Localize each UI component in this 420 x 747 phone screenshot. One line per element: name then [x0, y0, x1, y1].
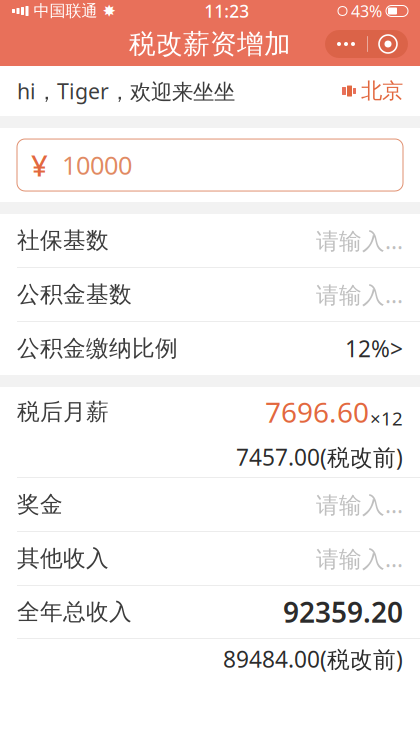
staticText: 奖金	[17, 491, 63, 518]
staticText: 北京	[361, 78, 403, 104]
button[interactable]: ¥	[17, 139, 403, 191]
staticText: 其他收入	[17, 545, 109, 572]
staticText: 公积金缴纳比例	[17, 335, 178, 362]
staticText: ¥	[31, 145, 48, 184]
staticText: 10000	[62, 148, 132, 182]
staticText: 社保基数	[17, 227, 109, 254]
staticText: hi，Tiger，欢迎来坐坐	[17, 77, 235, 105]
staticText: ×12	[370, 406, 403, 431]
button[interactable]: 社保基数	[0, 214, 420, 267]
staticText: 税改薪资增加	[129, 28, 291, 60]
staticText: 公积金基数	[17, 281, 132, 308]
staticText: 请输入...	[316, 225, 403, 255]
staticText: 11:23	[204, 0, 249, 22]
staticText: 请输入...	[316, 279, 403, 309]
button[interactable]: 公积金基数	[0, 268, 420, 321]
staticText: ✸	[102, 2, 115, 20]
staticText: 全年总收入	[17, 598, 132, 626]
button[interactable]: 北京	[342, 72, 403, 110]
staticText: 92359.20	[283, 593, 403, 631]
button[interactable]: More	[325, 30, 367, 58]
staticText: 中国联通	[33, 1, 97, 21]
staticText: 税后月薪	[17, 398, 109, 426]
button[interactable]: 奖金	[0, 478, 420, 531]
staticText: 请输入...	[316, 489, 403, 519]
staticText: 请输入...	[316, 543, 403, 573]
staticText: 7696.60	[265, 393, 369, 431]
staticText: 12%>	[345, 333, 403, 363]
staticText: 43%	[351, 0, 382, 22]
button[interactable]: 其他收入	[0, 532, 420, 585]
staticText: 89484.00(税改前)	[223, 644, 403, 674]
button[interactable]: Close	[368, 30, 408, 58]
staticText: 7457.00(税改前)	[236, 442, 403, 472]
button[interactable]: 公积金缴纳比例	[0, 322, 420, 375]
